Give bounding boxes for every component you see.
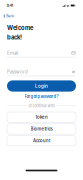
staticText: 9:41 bbox=[7, 3, 13, 8]
button[interactable]: Token bbox=[7, 112, 76, 122]
staticText: Email bbox=[7, 50, 18, 56]
button[interactable]: Forgot password? bbox=[7, 94, 76, 99]
staticText: back! bbox=[7, 34, 22, 41]
staticText: Biometrics bbox=[30, 126, 52, 132]
staticText: Login bbox=[35, 83, 48, 89]
staticText: Account bbox=[33, 138, 50, 143]
staticText: Password bbox=[7, 69, 28, 74]
staticText: or continue with bbox=[28, 103, 54, 108]
button[interactable]: Account bbox=[7, 136, 76, 146]
button[interactable]: Back bbox=[0, 11, 17, 21]
staticText: Welcome bbox=[7, 24, 33, 31]
button[interactable]: Login bbox=[7, 80, 76, 92]
button[interactable]: Show password bbox=[71, 70, 76, 74]
staticText: Forgot password? bbox=[24, 94, 58, 99]
button[interactable]: Biometrics bbox=[7, 124, 76, 134]
staticText: Back bbox=[6, 14, 14, 18]
staticText: Token bbox=[35, 115, 48, 120]
